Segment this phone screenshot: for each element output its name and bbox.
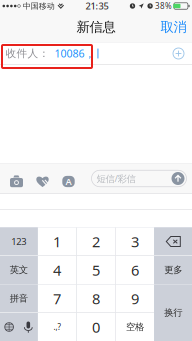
staticText: 1 bbox=[53, 232, 61, 251]
button[interactable]: 拼音 bbox=[0, 284, 38, 312]
staticText: 空格 bbox=[126, 321, 144, 333]
button[interactable]: 换行 bbox=[154, 284, 192, 341]
staticText: 英文 bbox=[10, 264, 28, 276]
staticText: 4 bbox=[53, 260, 61, 280]
button[interactable]: 取消 bbox=[154, 13, 192, 41]
staticText: 取消 bbox=[160, 19, 186, 35]
staticText: 9 bbox=[131, 289, 139, 308]
button[interactable]: 9 bbox=[116, 284, 154, 312]
staticText: 短信/彩信 bbox=[96, 172, 135, 185]
staticText: 拼音 bbox=[10, 293, 28, 304]
button[interactable]: 更多 bbox=[154, 256, 192, 284]
button[interactable]: Camera bbox=[3, 163, 29, 193]
button[interactable]: Apps bbox=[55, 163, 81, 193]
button[interactable]: .,? bbox=[38, 313, 76, 341]
staticText: 5 bbox=[92, 260, 100, 280]
staticText: 123 bbox=[11, 235, 26, 248]
button[interactable]: Delete bbox=[154, 227, 192, 255]
button[interactable]: 5 bbox=[77, 256, 115, 284]
button[interactable]: Send bbox=[170, 171, 185, 186]
button[interactable]: 1 bbox=[38, 227, 76, 255]
button[interactable]: 123 bbox=[0, 227, 38, 255]
staticText: 21:35 bbox=[85, 0, 108, 12]
button[interactable]: 英文 bbox=[0, 256, 38, 284]
button[interactable]: Switch keyboard bbox=[0, 313, 19, 341]
staticText: 7 bbox=[53, 289, 61, 308]
button[interactable]: Digital Touch bbox=[29, 163, 55, 193]
button[interactable]: 4 bbox=[38, 256, 76, 284]
staticText: .,? bbox=[54, 322, 61, 332]
staticText: 新信息 bbox=[76, 19, 115, 35]
staticText: 38% bbox=[155, 1, 172, 11]
button[interactable]: 8 bbox=[77, 284, 115, 312]
button[interactable]: Dictation bbox=[19, 313, 38, 341]
staticText: 8 bbox=[92, 289, 100, 308]
button[interactable]: 7 bbox=[38, 284, 76, 312]
staticText: 换行 bbox=[164, 307, 182, 318]
staticText: 3 bbox=[131, 232, 139, 251]
button[interactable]: 空格 bbox=[116, 313, 154, 341]
staticText: 中国移动 bbox=[23, 1, 55, 11]
staticText: 2 bbox=[92, 232, 100, 251]
button[interactable]: 6 bbox=[116, 256, 154, 284]
button[interactable]: Add contact bbox=[168, 42, 188, 64]
staticText: 更多 bbox=[164, 264, 182, 276]
button[interactable]: 2 bbox=[77, 227, 115, 255]
staticText: 0 bbox=[92, 317, 100, 337]
staticText: 6 bbox=[131, 260, 139, 280]
staticText: A bbox=[65, 175, 71, 188]
staticText: 10086， bbox=[54, 46, 95, 61]
button[interactable]: 3 bbox=[116, 227, 154, 255]
button[interactable]: 0 bbox=[77, 313, 115, 341]
staticText: 收件人： bbox=[5, 47, 49, 60]
